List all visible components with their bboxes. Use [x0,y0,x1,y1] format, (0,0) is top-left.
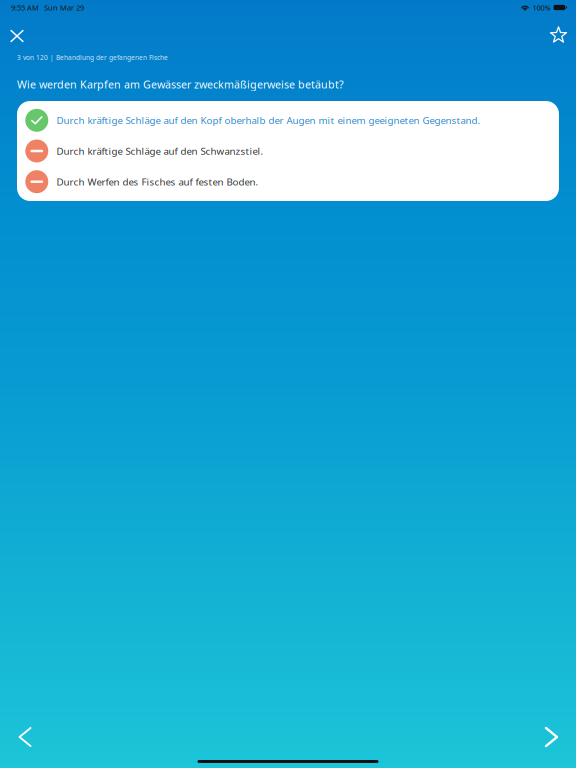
button[interactable]: Durch kräftige Schläge auf den Schwanzst… [17,136,559,166]
button[interactable]: Durch kräftige Schläge auf den Kopf ober… [17,105,559,136]
staticText: Durch kräftige Schläge auf den Kopf ober… [56,114,480,127]
button[interactable]: Durch Werfen des Fisches auf festen Bode… [17,166,559,197]
staticText: Sun Mar 29 [44,2,84,13]
button[interactable]: Add to favourites [542,22,575,50]
button[interactable]: Close [0,22,33,50]
staticText: 9:55 AM [11,2,39,13]
staticText: Durch kräftige Schläge auf den Schwanzst… [56,144,263,158]
button[interactable]: Next question [531,717,571,757]
staticText: 100% [533,2,551,13]
staticText: Durch Werfen des Fisches auf festen Bode… [56,175,258,188]
button[interactable]: Previous question [5,717,45,757]
staticText: 3 von 120 | Behandlung der gefangenen Fi… [17,53,168,62]
staticText: Wie werden Karpfen am Gewässer zweckmäßi… [17,77,344,91]
